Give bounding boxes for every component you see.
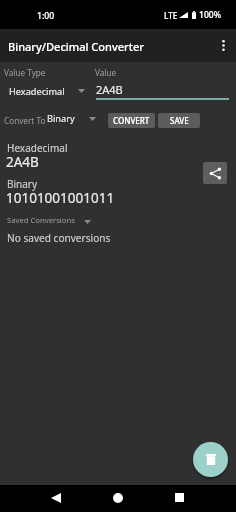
button[interactable]: More options — [210, 29, 236, 62]
button[interactable]: CONVERT — [108, 113, 155, 128]
staticText: SAVE — [170, 115, 189, 126]
staticText: Binary — [7, 177, 38, 191]
button[interactable]: Recents — [167, 484, 191, 511]
staticText: Convert To — [4, 115, 46, 126]
staticText: 1:00 — [37, 10, 55, 22]
button[interactable]: Hexadecimal — [4, 83, 88, 99]
staticText: Hexadecimal — [7, 141, 68, 155]
button[interactable]: Share — [203, 162, 227, 184]
button[interactable]: Delete — [193, 442, 228, 477]
staticText: 2A4B — [6, 153, 39, 171]
staticText: 2A4B — [96, 82, 123, 97]
staticText: Saved Conversions — [7, 215, 75, 225]
staticText: No saved conversions — [7, 231, 111, 245]
staticText: 100% — [199, 9, 222, 21]
button[interactable]: Back — [44, 484, 68, 511]
button[interactable]: Saved Conversions — [7, 214, 91, 226]
staticText: 10101001001011 — [6, 189, 115, 207]
staticText: Binary/Decimal Converter — [8, 39, 144, 54]
button[interactable]: SAVE — [158, 113, 200, 128]
button[interactable]: Home — [106, 484, 130, 511]
staticText: Binary — [47, 112, 75, 125]
staticText: CONVERT — [113, 115, 150, 126]
button[interactable]: Binary — [45, 111, 99, 126]
staticText: Hexadecimal — [9, 85, 65, 98]
staticText: Value — [95, 67, 117, 78]
staticText: LTE — [164, 10, 178, 21]
staticText: Value Type — [4, 67, 46, 78]
